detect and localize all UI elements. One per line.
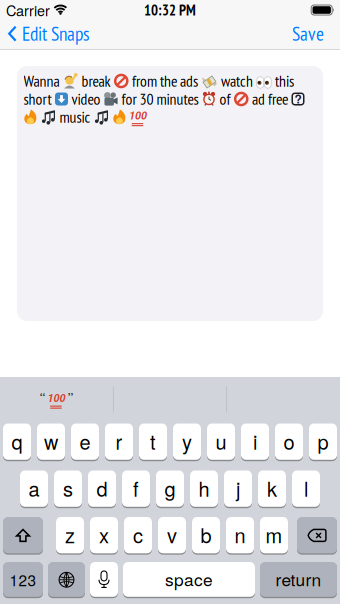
staticText: Edit Snaps <box>22 21 90 46</box>
button[interactable]: z <box>56 517 84 554</box>
button[interactable]: s <box>54 470 82 507</box>
staticText: i <box>253 427 257 455</box>
button[interactable]: y <box>173 423 201 460</box>
staticText: r <box>115 427 122 455</box>
staticText: return <box>275 566 321 591</box>
button[interactable]: x <box>90 517 118 554</box>
button[interactable]: l <box>292 470 320 507</box>
button[interactable]: Next keyboard <box>48 562 85 597</box>
button[interactable]: o <box>275 423 303 460</box>
staticText: a <box>28 474 39 502</box>
staticText: Save <box>292 21 324 46</box>
button[interactable]: f <box>122 470 150 507</box>
button[interactable]: c <box>124 517 152 554</box>
staticText: short <box>23 89 51 109</box>
staticText: Wanna <box>23 71 59 91</box>
button[interactable]: w <box>37 423 65 460</box>
staticText: watch <box>221 71 253 91</box>
button[interactable]: n <box>226 517 254 554</box>
staticText: d <box>96 474 107 502</box>
staticText: s <box>63 474 73 502</box>
staticText: k <box>267 474 277 502</box>
staticText: u <box>215 427 226 455</box>
staticText: ? <box>294 90 301 107</box>
staticText: b <box>200 520 211 549</box>
button[interactable]: p <box>309 423 337 460</box>
button[interactable]: Suggestion 100 <box>0 375 113 423</box>
staticText: of <box>219 89 230 109</box>
button[interactable]: j <box>224 470 252 507</box>
staticText: 10:32 PM <box>144 0 196 19</box>
staticText: g <box>164 474 175 502</box>
staticText: h <box>198 474 209 502</box>
staticText: space <box>165 566 213 591</box>
staticText: o <box>283 427 294 455</box>
staticText: q <box>11 427 22 455</box>
staticText: x <box>99 520 109 549</box>
button[interactable]: g <box>156 470 184 507</box>
staticText: p <box>317 427 328 455</box>
staticText: from the ads <box>132 71 198 91</box>
button[interactable]: e <box>71 423 99 460</box>
staticText: 100 <box>47 390 65 405</box>
button[interactable]: i <box>241 423 269 460</box>
staticText: n <box>234 520 245 549</box>
staticText: y <box>182 427 192 455</box>
button[interactable]: Save <box>292 21 340 46</box>
button[interactable]: return <box>260 562 337 597</box>
staticText: z <box>65 520 75 549</box>
button[interactable]: a <box>20 470 48 507</box>
staticText: Carrier <box>6 0 50 20</box>
staticText: t <box>150 427 156 455</box>
staticText: break <box>81 71 110 91</box>
staticText: this <box>275 71 294 91</box>
staticText: video <box>71 89 100 109</box>
button[interactable]: Suggestion 2 <box>114 375 226 423</box>
staticText: m <box>265 520 282 549</box>
staticText: j <box>236 474 240 502</box>
staticText: 123 <box>9 569 36 591</box>
button[interactable]: k <box>258 470 286 507</box>
staticText: ” <box>67 388 73 406</box>
button[interactable]: m <box>260 517 288 554</box>
button[interactable]: d <box>88 470 116 507</box>
button[interactable]: b <box>192 517 220 554</box>
staticText: ad free <box>252 89 288 109</box>
button[interactable]: h <box>190 470 218 507</box>
staticText: l <box>304 474 308 502</box>
button[interactable]: Back <box>0 21 90 46</box>
button[interactable]: Dictate <box>90 562 118 597</box>
button[interactable]: Numbers <box>3 562 43 597</box>
button[interactable]: space <box>123 562 255 597</box>
staticText: e <box>79 427 90 455</box>
staticText: music <box>59 107 90 127</box>
staticText: c <box>133 520 143 549</box>
button[interactable]: u <box>207 423 235 460</box>
button[interactable]: v <box>158 517 186 554</box>
button[interactable]: q <box>3 423 31 460</box>
button[interactable]: Shift <box>3 517 43 554</box>
staticText: w <box>44 427 58 455</box>
button[interactable]: r <box>105 423 133 460</box>
staticText: for 30 minutes <box>121 89 198 109</box>
button[interactable]: t <box>139 423 167 460</box>
staticText: 100 <box>129 108 147 123</box>
button[interactable]: Delete <box>297 517 337 554</box>
staticText: f <box>133 474 139 502</box>
staticText: v <box>167 520 177 549</box>
staticText: “ <box>39 388 45 406</box>
button[interactable]: Suggestion 3 <box>227 375 340 423</box>
